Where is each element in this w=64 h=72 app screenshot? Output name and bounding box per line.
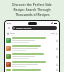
staticText: Thousands of Recipes	[15, 13, 50, 17]
button[interactable]: Save recipe	[5, 60, 59, 68]
button[interactable]: Sort	[51, 32, 57, 35]
button[interactable]: Save recipe	[55, 55, 58, 58]
staticText: 9:41	[7, 22, 12, 25]
staticText: Discover the Perfect Side	[12, 3, 52, 7]
button[interactable]: Save recipe	[55, 63, 58, 66]
button[interactable]: Save recipe	[5, 44, 59, 52]
button[interactable]: Save recipe	[55, 69, 58, 71]
staticText: Filter	[10, 32, 15, 35]
staticText: Recipe: Search Through	[13, 8, 51, 12]
button[interactable]: Save recipe	[5, 52, 59, 60]
button[interactable]: Save recipe	[55, 47, 58, 50]
button[interactable]: Save recipe	[55, 39, 58, 42]
staticText: Search Recipes	[16, 27, 32, 30]
button[interactable]: Search Recipes	[12, 26, 57, 30]
button[interactable]: Filter	[7, 32, 15, 35]
staticText: Sort	[51, 32, 55, 35]
button[interactable]: Save recipe	[5, 36, 59, 44]
button[interactable]: Back	[7, 26, 11, 30]
button[interactable]: Save recipe	[5, 68, 59, 72]
